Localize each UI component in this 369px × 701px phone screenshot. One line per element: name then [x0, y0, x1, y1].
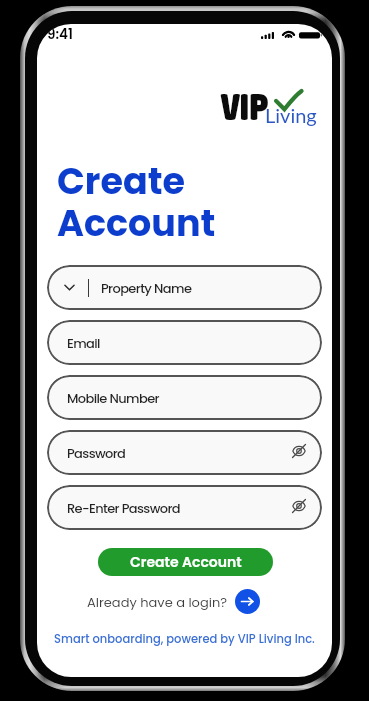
button[interactable]: Create Account [98, 548, 273, 576]
button[interactable]: Mobile Number [47, 375, 322, 420]
button[interactable]: Email [47, 320, 322, 365]
staticText: 9:41 [47, 25, 73, 44]
button[interactable]: Already have a login? [87, 593, 228, 611]
staticText: Mobile Number [67, 389, 159, 407]
staticText: Password [67, 444, 126, 462]
staticText: Email [67, 334, 100, 352]
button[interactable]: Password [47, 430, 322, 475]
staticText: Account [57, 198, 216, 249]
staticText: Create [57, 156, 186, 207]
staticText: Create Account [130, 552, 242, 572]
button[interactable]: Property Name [47, 265, 322, 310]
other: Show password [292, 499, 306, 513]
button[interactable]: Go to login [235, 589, 260, 614]
staticText: Re-Enter Password [67, 499, 181, 517]
staticText: VIP [221, 85, 268, 129]
other: Show password [292, 444, 306, 458]
staticText: Living [265, 103, 317, 127]
button[interactable]: Re-Enter Password [47, 485, 322, 530]
staticText: Smart onboarding, powered by VIP Living … [37, 631, 332, 647]
staticText: Property Name [101, 279, 192, 297]
